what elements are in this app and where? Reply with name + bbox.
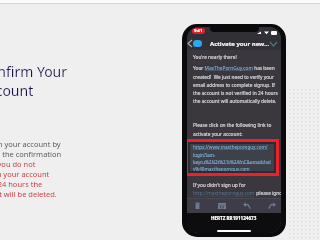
button[interactable]: Archive bbox=[214, 198, 229, 213]
staticText: HERTZ RR191124673 bbox=[211, 215, 257, 221]
staticText: Confirm your account by clicking the con… bbox=[0, 139, 62, 159]
staticText: You're nearly there! bbox=[193, 54, 237, 61]
button[interactable]: Forward bbox=[264, 198, 279, 213]
button[interactable]: Delete bbox=[190, 198, 205, 213]
staticText: Activate your new… bbox=[210, 40, 270, 48]
button[interactable]: Back bbox=[187, 37, 194, 49]
staticText: 9:41 bbox=[194, 28, 203, 34]
staticText: Please click on the following link to ac… bbox=[193, 122, 272, 137]
staticText: please ignore bbox=[255, 190, 281, 197]
button[interactable]: Expand header bbox=[267, 38, 279, 49]
staticText: Your MaxThePornGuy.com has been created!… bbox=[193, 65, 278, 104]
button[interactable]: Reply bbox=[239, 198, 254, 213]
button[interactable]: Sender avatar bbox=[193, 40, 202, 47]
staticText: link. If you do not confirm your account… bbox=[0, 159, 57, 199]
staticText: Account bbox=[0, 81, 34, 100]
staticText: Confirm Your bbox=[0, 62, 68, 81]
staticText: http://maxthepornguy.com bbox=[193, 190, 255, 197]
button[interactable]: https://www.maxthepornguy.com/ login?lam… bbox=[190, 144, 274, 171]
staticText: https://www.maxthepornguy.com/ login?lam… bbox=[193, 144, 271, 171]
staticText: If you didn't sign up for bbox=[193, 182, 246, 189]
